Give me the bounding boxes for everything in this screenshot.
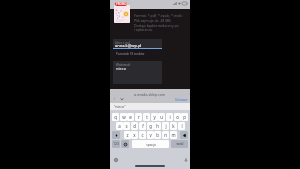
button[interactable]: k xyxy=(170,122,177,130)
staticText: w xyxy=(122,114,126,120)
button[interactable]: “nieco” xyxy=(114,103,126,110)
staticText: o xyxy=(176,114,179,120)
staticText: u xyxy=(160,114,163,120)
button[interactable]: Backspace xyxy=(180,131,188,139)
button[interactable]: Change keyboard xyxy=(113,157,118,162)
staticText: y xyxy=(153,114,156,120)
staticText: s xyxy=(125,123,128,129)
button[interactable]: a xyxy=(116,122,123,130)
staticText: p xyxy=(183,114,186,120)
button[interactable]: x xyxy=(131,131,138,139)
staticText: nieco xyxy=(116,66,127,71)
staticText: x xyxy=(133,132,136,138)
button[interactable]: t xyxy=(143,113,150,121)
button[interactable]: Gotowe xyxy=(175,97,188,102)
staticText: r xyxy=(138,114,140,120)
staticText: v xyxy=(149,132,152,138)
button[interactable]: o xyxy=(174,113,181,121)
staticText: a.smaks-sklep.com xyxy=(134,92,166,97)
button[interactable]: p xyxy=(181,113,188,121)
button[interactable]: u xyxy=(158,113,165,121)
button[interactable]: w xyxy=(120,113,127,121)
button[interactable]: r xyxy=(135,113,142,121)
button[interactable]: Dictate xyxy=(183,157,188,162)
button[interactable]: y xyxy=(151,113,158,121)
staticText: PROMO xyxy=(116,2,127,6)
button[interactable]: j xyxy=(162,122,169,130)
staticText: q xyxy=(114,114,117,120)
button[interactable]: Previous field xyxy=(112,96,117,101)
button[interactable]: b xyxy=(154,131,161,139)
staticText: k xyxy=(172,123,175,129)
staticText: wróć xyxy=(176,142,184,146)
staticText: l xyxy=(181,123,183,129)
staticText: g xyxy=(149,123,152,129)
staticText: c xyxy=(141,132,144,138)
staticText: m xyxy=(171,132,176,138)
button[interactable]: Next field xyxy=(119,96,124,101)
staticText: Pozostało 18 znaków xyxy=(116,52,145,56)
button[interactable]: v xyxy=(147,131,154,139)
staticText: Dostęp będzie widoczny po zakupie xyxy=(134,23,190,28)
staticText: d xyxy=(133,123,136,129)
staticText: i xyxy=(169,114,171,120)
button[interactable]: Adres e-mail xyxy=(113,39,162,49)
button[interactable]: Wiadomość xyxy=(113,61,162,84)
button[interactable]: h xyxy=(154,122,161,130)
button[interactable]: Shift xyxy=(112,131,120,139)
button[interactable]: spacja xyxy=(132,140,169,148)
button[interactable]: m xyxy=(170,131,177,139)
button[interactable]: Emoji keyboard xyxy=(121,140,129,148)
staticText: h xyxy=(156,123,159,129)
staticText: b xyxy=(156,132,159,138)
button[interactable]: d xyxy=(131,122,138,130)
staticText: i opłaceniu. xyxy=(134,27,153,32)
staticText: j xyxy=(165,123,167,129)
staticText: Wiadomość xyxy=(116,63,131,67)
button[interactable]: g xyxy=(147,122,154,130)
staticText: n xyxy=(164,132,167,138)
staticText: Adres e-mail xyxy=(115,41,131,45)
button[interactable]: e xyxy=(127,113,134,121)
staticText: z xyxy=(126,132,129,138)
staticText: a xyxy=(118,123,121,129)
staticText: Gotowe xyxy=(175,97,188,102)
button[interactable]: s xyxy=(123,122,130,130)
staticText: “nieco” xyxy=(114,104,126,109)
button[interactable]: i xyxy=(166,113,173,121)
button[interactable]: z xyxy=(124,131,131,139)
button[interactable]: c xyxy=(139,131,146,139)
staticText: 123 xyxy=(113,142,119,146)
staticText: Format: *.pdf, *.epub, *.mobi xyxy=(134,13,183,18)
staticText: spacja xyxy=(146,142,156,146)
button[interactable]: q xyxy=(112,113,119,121)
staticText: Plik zajmuje ok. 28 MB. xyxy=(134,18,172,23)
button[interactable]: n xyxy=(162,131,169,139)
button[interactable]: l xyxy=(178,122,185,130)
button[interactable]: 123 xyxy=(112,140,120,148)
staticText: anna.k@wp.pl xyxy=(115,43,142,48)
staticText: f xyxy=(142,123,144,129)
button[interactable]: f xyxy=(139,122,146,130)
button[interactable]: wróć xyxy=(171,140,188,148)
staticText: t xyxy=(146,114,148,120)
staticText: e xyxy=(129,114,132,120)
